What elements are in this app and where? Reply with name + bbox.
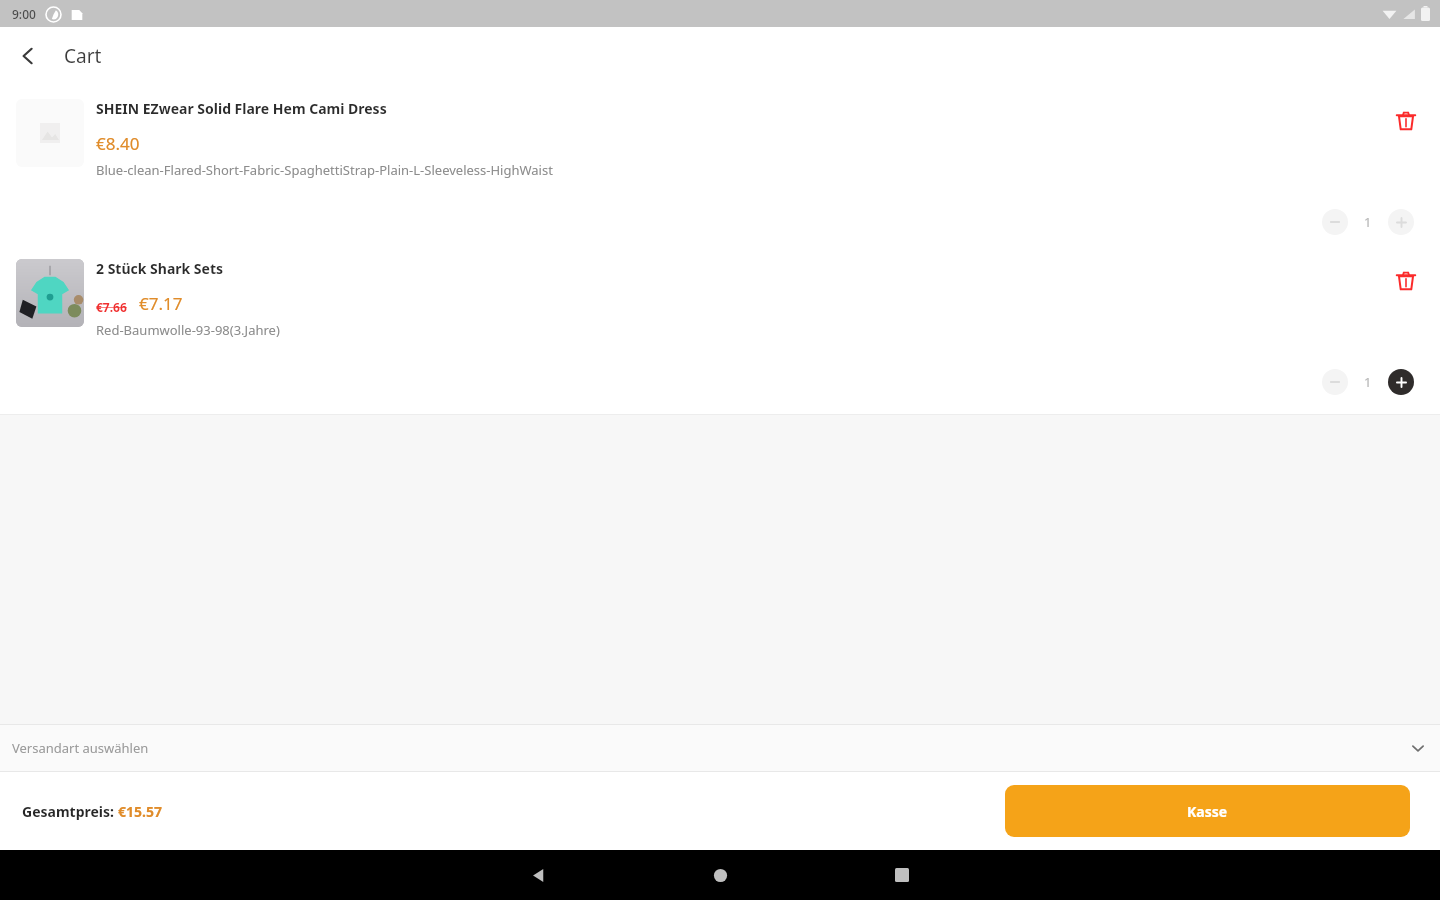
staticText: €7.17: [139, 292, 183, 315]
staticText: €8.40: [96, 132, 140, 155]
staticText: 1: [1364, 373, 1372, 391]
staticText: Kasse: [1187, 802, 1228, 821]
button[interactable]: Decrease quantity: [1322, 209, 1348, 235]
button[interactable]: Versandart auswählen: [0, 724, 1440, 772]
staticText: 1: [1364, 213, 1372, 231]
button[interactable]: Kasse: [1005, 785, 1410, 837]
staticText: Red-Baumwolle-93-98(3.Jahre): [96, 321, 280, 339]
staticText: 2 Stück Shark Sets: [96, 259, 224, 278]
button[interactable]: Delete item: [1384, 99, 1428, 143]
button[interactable]: Recent apps: [874, 850, 930, 900]
button[interactable]: SHEIN EZwear Solid Flare Hem Cami Dress: [0, 85, 1440, 245]
button[interactable]: 2 Stück Shark Sets: [0, 245, 1440, 405]
staticText: 9:00: [12, 6, 36, 22]
staticText: €15.57: [118, 802, 162, 821]
staticText: Cart: [64, 43, 102, 69]
staticText: Versandart auswählen: [12, 739, 149, 757]
staticText: Gesamtpreis:: [22, 802, 118, 821]
button[interactable]: Increase quantity: [1388, 369, 1414, 395]
staticText: €7.66: [96, 299, 127, 315]
button[interactable]: Back: [0, 28, 56, 84]
button[interactable]: Increase quantity: [1388, 209, 1414, 235]
staticText: SHEIN EZwear Solid Flare Hem Cami Dress: [96, 99, 387, 118]
staticText: Blue-clean-Flared-Short-Fabric-Spaghetti…: [96, 161, 553, 179]
button[interactable]: Delete item: [1384, 259, 1428, 303]
button[interactable]: Decrease quantity: [1322, 369, 1348, 395]
button[interactable]: Home: [692, 850, 748, 900]
button[interactable]: Back: [510, 850, 566, 900]
